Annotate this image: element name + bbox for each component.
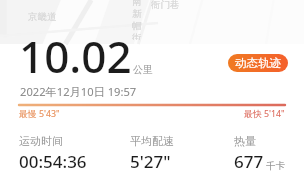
staticText: 街 [132, 32, 142, 40]
button[interactable]: 平均配速 [130, 134, 174, 173]
button[interactable]: 运动时间 [19, 134, 87, 173]
staticText: 千卡 [266, 160, 285, 172]
button[interactable]: 热量 [234, 134, 285, 173]
button[interactable]: 动态轨迹 [228, 54, 288, 72]
staticText: 平均配速 [130, 134, 174, 148]
staticText: 南 [132, 0, 142, 8]
staticText: 京畿道 [28, 11, 57, 23]
staticText: 衙门巷 [151, 0, 180, 11]
staticText: 公里 [133, 63, 153, 76]
staticText: 动态轨迹 [235, 56, 281, 70]
staticText: 最快 5'14" [244, 108, 285, 120]
staticText: 帽 [132, 20, 142, 32]
staticText: 5'27" [130, 150, 171, 173]
staticText: 运动时间 [19, 134, 63, 148]
staticText: 最慢 5'43" [19, 108, 60, 120]
staticText: 677 [234, 150, 264, 173]
staticText: 00:54:36 [19, 150, 87, 173]
staticText: 10.02 [19, 26, 132, 86]
button[interactable]: Route map [0, 0, 304, 44]
staticText: 热量 [234, 134, 256, 148]
staticText: 新 [132, 8, 142, 20]
staticText: 2022年12月10日 19:57 [20, 84, 137, 99]
